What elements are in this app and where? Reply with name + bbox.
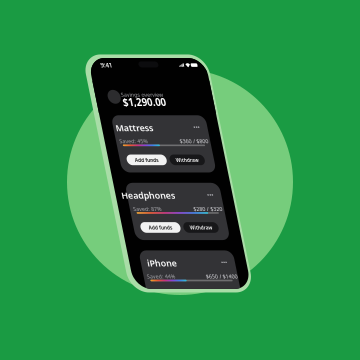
staticText: Saved: 45%	[49, 245, 143, 268]
staticText: $1,290.00	[87, 115, 231, 157]
staticText: Savings overview	[86, 101, 226, 124]
staticText: Mattress	[45, 195, 170, 234]
staticText: $360 / $800	[250, 245, 346, 268]
